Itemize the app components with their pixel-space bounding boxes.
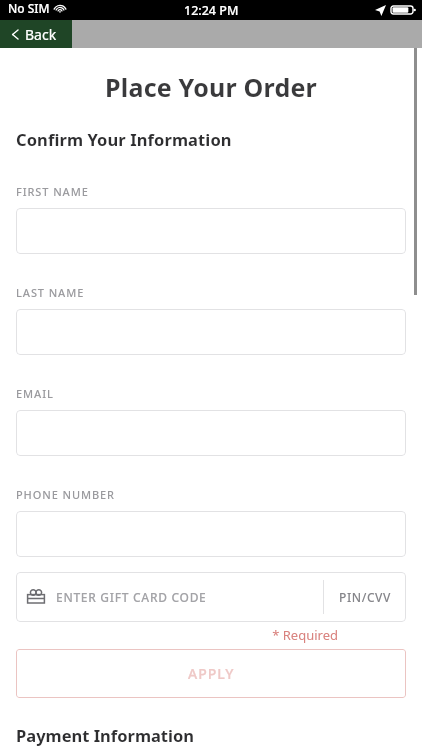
staticText: Confirm Your Information [16, 128, 232, 150]
staticText: * Required [0, 626, 338, 644]
staticText: Place Your Order [0, 70, 422, 104]
button[interactable] [16, 309, 406, 355]
staticText: Back [25, 25, 57, 44]
staticText: ENTER GIFT CARD CODE [56, 589, 207, 605]
button[interactable] [16, 410, 406, 456]
staticText: EMAIL [16, 386, 54, 401]
button[interactable]: PIN/CVV [324, 572, 406, 622]
button[interactable]: Back [0, 20, 72, 48]
button[interactable] [16, 208, 406, 254]
button[interactable]: Gift card [16, 572, 323, 622]
staticText: FIRST NAME [16, 184, 89, 199]
staticText: PIN/CVV [339, 589, 392, 605]
button[interactable]: APPLY [16, 649, 406, 698]
staticText: No SIM [8, 0, 50, 16]
staticText: PHONE NUMBER [16, 487, 115, 502]
button[interactable] [16, 511, 406, 557]
staticText: LAST NAME [16, 285, 85, 300]
other: Gift card [26, 587, 46, 607]
staticText: 12:24 PM [184, 2, 239, 19]
staticText: Payment Information [16, 724, 194, 746]
staticText: APPLY [188, 664, 235, 683]
